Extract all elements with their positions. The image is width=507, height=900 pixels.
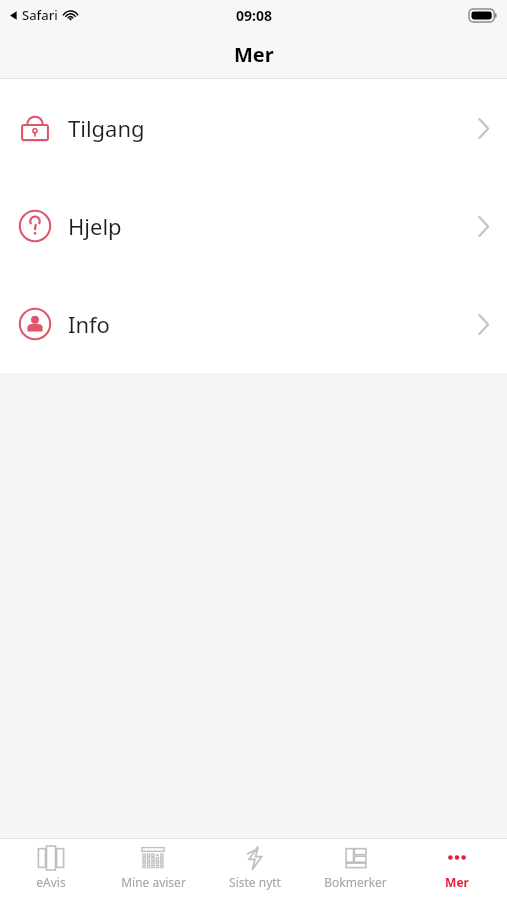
button[interactable]: Hjelp: [0, 177, 507, 275]
staticText: Hjelp: [68, 211, 122, 241]
staticText: Info: [68, 309, 110, 339]
button[interactable]: eAvis: [0, 839, 102, 900]
staticText: 09:08: [236, 6, 272, 25]
staticText: Mer: [234, 41, 274, 68]
staticText: Mine aviser: [121, 874, 186, 890]
button[interactable]: Mine aviser: [102, 839, 204, 900]
staticText: Mer: [445, 874, 469, 890]
button[interactable]: Siste nytt: [204, 839, 305, 900]
staticText: eAvis: [36, 874, 66, 890]
button[interactable]: Tilgang: [0, 79, 507, 177]
button[interactable]: Mer: [406, 839, 507, 900]
staticText: Siste nytt: [229, 874, 281, 890]
staticText: Safari: [22, 6, 58, 24]
button[interactable]: Info: [0, 275, 507, 373]
staticText: Bokmerker: [324, 874, 387, 890]
button[interactable]: Bokmerker: [305, 839, 406, 900]
staticText: Tilgang: [68, 113, 145, 143]
